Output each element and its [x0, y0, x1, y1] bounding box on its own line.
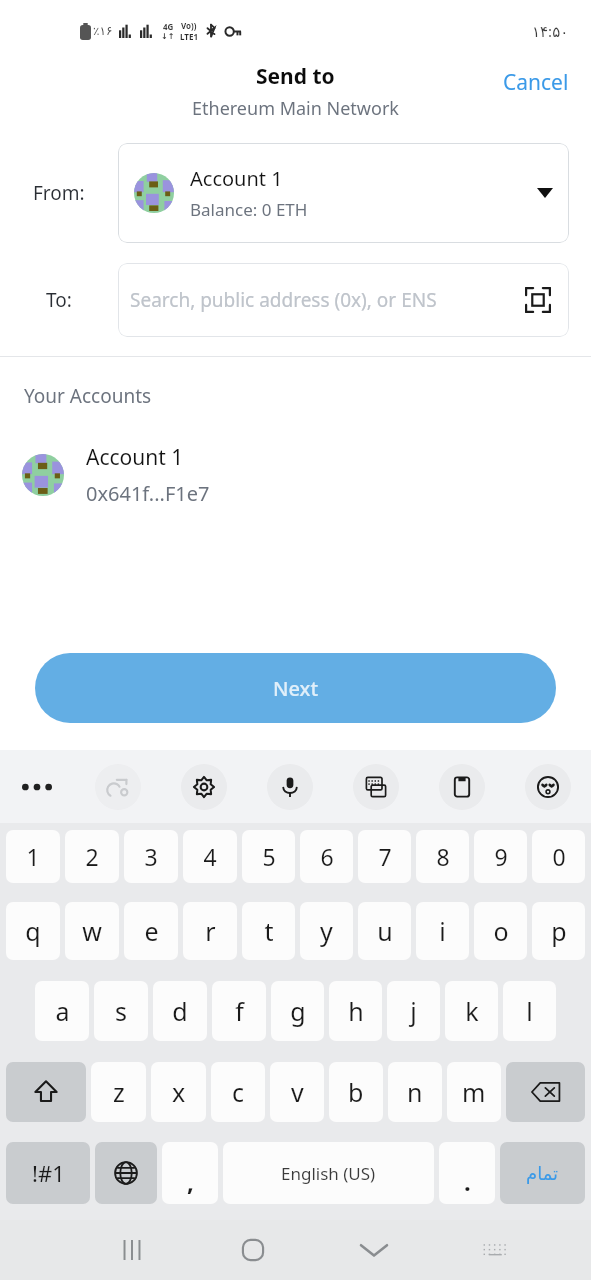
- button[interactable]: d: [153, 981, 207, 1041]
- button[interactable]: More options: [0, 750, 74, 823]
- button[interactable]: Clipboard: [419, 750, 505, 823]
- button[interactable]: Recent apps: [71, 1220, 192, 1280]
- staticText: o: [493, 914, 509, 948]
- staticText: 6: [320, 841, 334, 872]
- staticText: ,: [187, 1165, 194, 1198]
- staticText: Vo)): [181, 20, 197, 31]
- button[interactable]: a: [35, 981, 89, 1041]
- button[interactable]: i: [416, 902, 469, 960]
- button[interactable]: !#1: [6, 1142, 90, 1204]
- staticText: m: [462, 1075, 486, 1109]
- button[interactable]: n: [388, 1062, 442, 1122]
- button[interactable]: 4: [183, 830, 237, 883]
- staticText: Send to: [256, 62, 335, 91]
- button[interactable]: v: [270, 1062, 324, 1122]
- button[interactable]: Cancel: [499, 64, 573, 101]
- button[interactable]: Voice input: [247, 750, 333, 823]
- button[interactable]: p: [532, 902, 585, 960]
- button[interactable]: z: [91, 1062, 146, 1122]
- staticText: z: [113, 1075, 125, 1109]
- staticText: y: [320, 914, 333, 948]
- staticText: a: [55, 994, 70, 1028]
- button[interactable]: 8: [416, 830, 469, 883]
- button[interactable]: g: [271, 981, 324, 1041]
- staticText: ↓↑: [161, 32, 175, 41]
- button[interactable]: 6: [300, 830, 353, 883]
- staticText: 3: [144, 841, 158, 872]
- button[interactable]: w: [65, 902, 119, 960]
- staticText: j: [410, 994, 417, 1028]
- button[interactable]: ,: [162, 1142, 218, 1204]
- staticText: f: [235, 994, 244, 1028]
- staticText: .: [464, 1165, 471, 1198]
- staticText: 0: [552, 841, 566, 872]
- button[interactable]: 1: [6, 830, 60, 883]
- button[interactable]: Keyboard switcher: [434, 1220, 555, 1280]
- staticText: 4G: [163, 21, 174, 32]
- staticText: Balance: 0 ETH: [190, 198, 308, 221]
- button[interactable]: k: [445, 981, 498, 1041]
- staticText: 4: [203, 841, 217, 872]
- staticText: 8: [436, 841, 450, 872]
- staticText: !#1: [32, 1158, 65, 1188]
- button[interactable]: t: [242, 902, 295, 960]
- button[interactable]: Account 1: [0, 439, 591, 517]
- staticText: 5: [262, 841, 276, 872]
- button[interactable]: h: [329, 981, 382, 1041]
- staticText: 2: [85, 841, 99, 872]
- button[interactable]: l: [503, 981, 556, 1041]
- button[interactable]: f: [212, 981, 266, 1041]
- button[interactable]: 5: [242, 830, 295, 883]
- button[interactable]: Keyboard modes: [333, 750, 419, 823]
- button[interactable]: 9: [474, 830, 527, 883]
- button[interactable]: q: [6, 902, 60, 960]
- button[interactable]: b: [329, 1062, 383, 1122]
- button[interactable]: c: [211, 1062, 265, 1122]
- staticText: u: [377, 914, 393, 948]
- staticText: Ethereum Main Network: [192, 96, 399, 121]
- button[interactable]: 2: [65, 830, 119, 883]
- staticText: e: [144, 914, 159, 948]
- staticText: h: [348, 994, 364, 1028]
- button[interactable]: Shift: [6, 1062, 86, 1122]
- button[interactable]: j: [387, 981, 440, 1041]
- button[interactable]: 3: [124, 830, 178, 883]
- button[interactable]: تمام: [500, 1142, 585, 1204]
- staticText: w: [82, 914, 102, 948]
- button[interactable]: English (US): [223, 1142, 434, 1204]
- button[interactable]: r: [183, 902, 237, 960]
- button[interactable]: e: [124, 902, 178, 960]
- button[interactable]: y: [300, 902, 353, 960]
- staticText: 1: [26, 841, 40, 872]
- button[interactable]: .: [439, 1142, 495, 1204]
- staticText: Account 1: [86, 443, 184, 472]
- button[interactable]: m: [447, 1062, 501, 1122]
- button[interactable]: Next: [35, 653, 556, 723]
- button[interactable]: Auto replace: [74, 750, 161, 823]
- staticText: Search, public address (0x), or ENS: [130, 287, 521, 313]
- button[interactable]: 7: [358, 830, 411, 883]
- button[interactable]: Account 1: [118, 143, 569, 243]
- button[interactable]: x: [151, 1062, 206, 1122]
- staticText: b: [348, 1075, 364, 1109]
- button[interactable]: o: [474, 902, 527, 960]
- button[interactable]: Settings: [161, 750, 247, 823]
- staticText: g: [290, 994, 306, 1028]
- staticText: r: [205, 914, 216, 948]
- staticText: p: [551, 914, 567, 948]
- staticText: v: [291, 1075, 304, 1109]
- button[interactable]: Backspace: [506, 1062, 585, 1122]
- button[interactable]: Search, public address (0x), or ENS: [118, 263, 569, 337]
- staticText: تمام: [526, 1163, 559, 1184]
- button[interactable]: 0: [532, 830, 585, 883]
- button[interactable]: Change language: [95, 1142, 157, 1204]
- button[interactable]: Home: [192, 1220, 313, 1280]
- button[interactable]: Emoji: [505, 750, 591, 823]
- button[interactable]: Scan QR code: [521, 283, 555, 317]
- button[interactable]: u: [358, 902, 411, 960]
- button[interactable]: s: [94, 981, 148, 1041]
- staticText: x: [172, 1075, 186, 1109]
- staticText: 7: [378, 841, 392, 872]
- staticText: t: [264, 914, 274, 948]
- button[interactable]: Hide keyboard: [313, 1220, 434, 1280]
